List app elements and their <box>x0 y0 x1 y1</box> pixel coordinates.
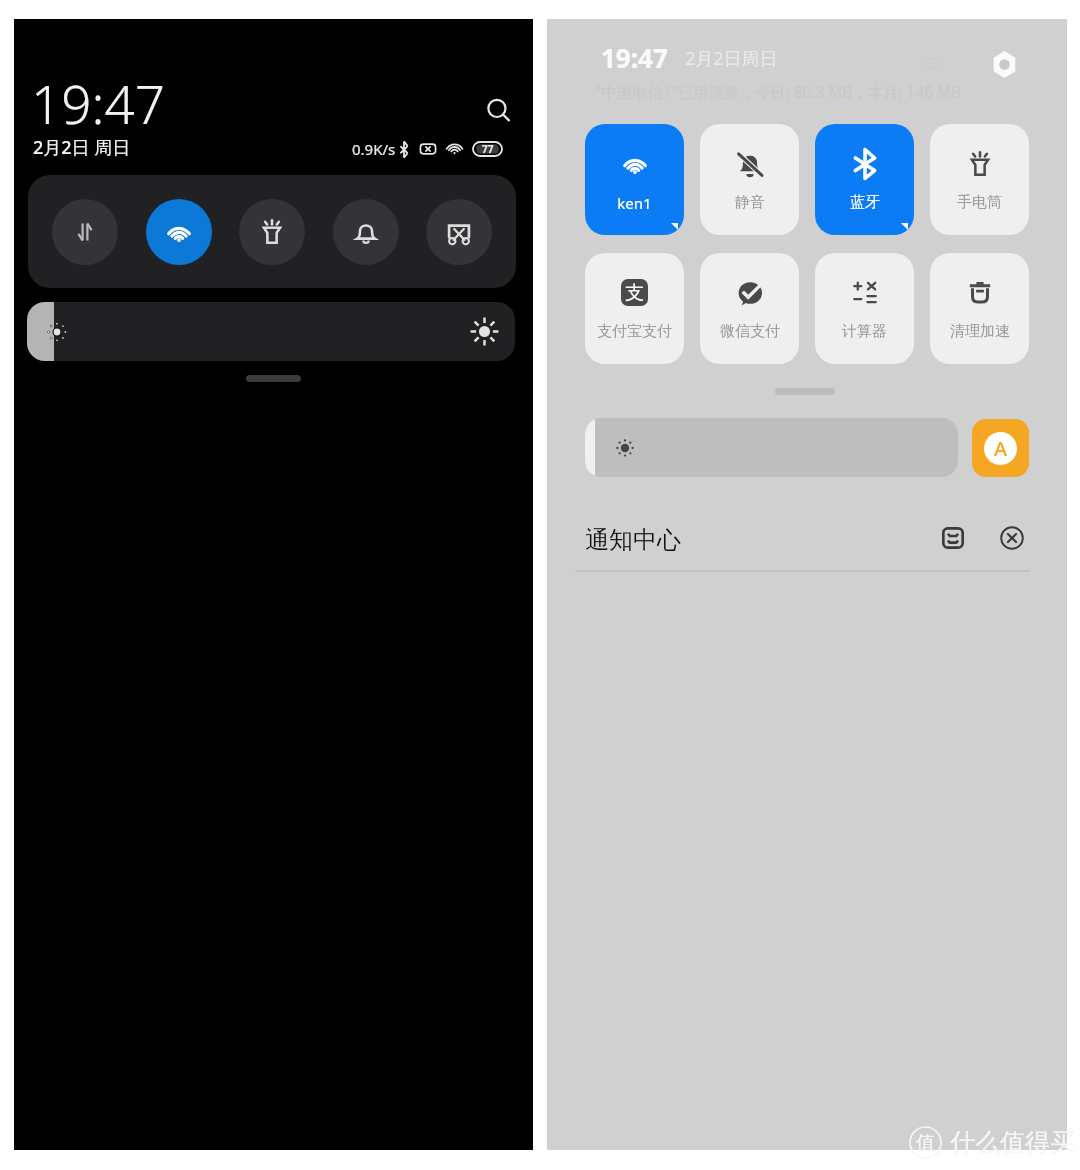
button[interactable]: Clear all <box>993 519 1031 557</box>
staticText: 77 <box>482 142 494 156</box>
staticText: 通知中心 <box>585 525 681 555</box>
button[interactable] <box>585 418 958 477</box>
staticText: 19:47 <box>31 67 165 139</box>
button[interactable]: Toggle <box>333 199 399 265</box>
button[interactable]: Toggle <box>239 199 305 265</box>
staticText: 静音 <box>735 193 765 212</box>
button[interactable]: Settings <box>986 46 1022 82</box>
staticText: 清理加速 <box>950 322 1010 341</box>
staticText: 计算器 <box>842 322 887 341</box>
button[interactable]: 蓝牙 <box>815 124 914 235</box>
button[interactable]: Notification settings <box>934 519 972 557</box>
staticText: 支付宝支付 <box>597 322 672 341</box>
button[interactable]: 静音 <box>700 124 799 235</box>
button[interactable]: Toggle <box>146 199 212 265</box>
button[interactable] <box>27 302 515 361</box>
button[interactable]: Toggle <box>52 199 118 265</box>
staticText: ken1 <box>617 193 652 213</box>
button[interactable]: 手电筒 <box>930 124 1029 235</box>
button[interactable]: ken1 <box>585 124 684 235</box>
staticText: 手电筒 <box>957 193 1002 212</box>
button[interactable]: Toggle <box>426 199 492 265</box>
button[interactable]: Search <box>477 89 521 133</box>
staticText: 值 <box>916 1131 935 1155</box>
staticText: 2月2日 周日 <box>33 135 131 160</box>
staticText: 什么值得买 <box>950 1127 1075 1158</box>
staticText: A <box>994 435 1008 462</box>
staticText: 2月2日周日 <box>685 46 778 71</box>
staticText: 蓝牙 <box>850 193 880 212</box>
staticText: 19:47 <box>601 40 668 75</box>
button[interactable]: 计算器 <box>815 253 914 364</box>
staticText: 支 <box>625 281 644 305</box>
button[interactable]: 支 <box>585 253 684 364</box>
staticText: 微信支付 <box>720 322 780 341</box>
button[interactable]: Auto brightness <box>972 419 1029 477</box>
button[interactable]: 清理加速 <box>930 253 1029 364</box>
button[interactable]: 微信支付 <box>700 253 799 364</box>
staticText: 0.9K/s <box>352 139 396 159</box>
